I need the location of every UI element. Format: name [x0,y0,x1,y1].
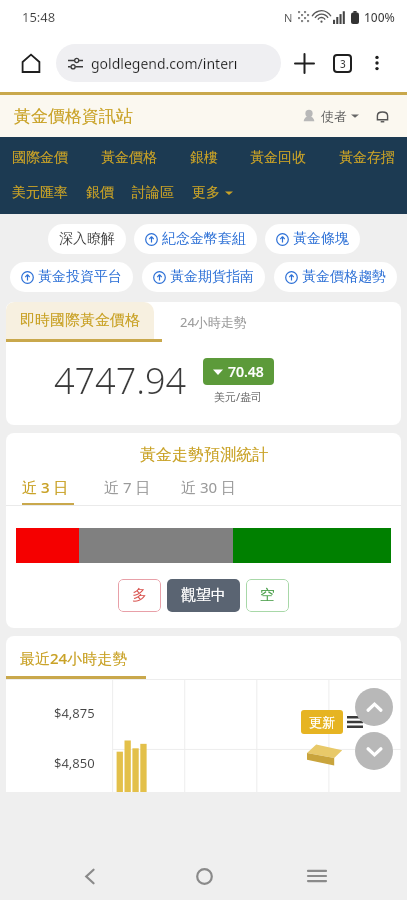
button[interactable]: 紀念金幣套組 [134,224,257,254]
staticText: 觀望中 [181,586,226,605]
button[interactable]: 最近24小時走勢 [6,636,128,676]
staticText: N [284,10,293,25]
button[interactable]: 深入瞭解 [48,224,126,254]
button[interactable]: 銀樓 [190,145,218,171]
button[interactable]: Recent apps [293,852,341,900]
staticText: 100% [364,9,395,25]
button[interactable]: 黃金價格趨勢 [274,262,397,292]
staticText: 黃金價格趨勢 [302,268,386,286]
staticText: goldlegend.com/interı [91,54,238,73]
button[interactable]: 使者 [302,108,359,124]
button[interactable]: Tabs [325,46,359,80]
button[interactable]: goldlegend.com/interı [56,44,281,82]
staticText: 紀念金幣套組 [162,230,246,248]
button[interactable]: 近 30 日 [151,477,236,497]
button[interactable]: 黃金回收 [250,145,306,171]
button[interactable]: 黃金價格 [101,145,157,171]
button[interactable]: 觀望中 [167,579,240,612]
staticText: 更新 [309,714,335,730]
staticText: 3 [340,57,346,71]
button[interactable]: More options [361,47,393,79]
staticText: 多 [132,586,147,605]
button[interactable]: 黃金條塊 [265,224,360,254]
staticText: 15:48 [22,8,56,26]
staticText: 4747.94 [54,356,187,405]
button[interactable]: 黃金價格資訊站 [14,106,133,127]
button[interactable]: 銀價 [86,180,114,206]
button[interactable]: 多 [118,579,161,612]
staticText: 深入瞭解 [59,230,115,248]
button[interactable]: 美元匯率 [12,180,68,206]
button[interactable]: 黃金投資平台 [10,262,133,292]
staticText: 美元/盎司 [214,389,263,404]
button[interactable]: 黃金存摺 [339,145,395,171]
button[interactable]: Notifications [371,105,393,127]
staticText: 使者 [321,108,347,124]
button[interactable]: Scroll down [355,732,393,770]
button[interactable]: Home [14,46,48,80]
staticText: 空 [260,586,275,605]
staticText: $4,850 [54,754,95,772]
button[interactable]: 討論區 [132,180,174,206]
button[interactable]: Back [66,852,114,900]
button[interactable]: 黃金期貨指南 [142,262,265,292]
staticText: $4,875 [54,704,95,722]
button[interactable]: 即時國際黃金價格 [6,302,154,339]
staticText: 黃金條塊 [293,230,349,248]
button[interactable]: 近 3 日 [22,477,69,503]
staticText: 黃金期貨指南 [170,268,254,286]
button[interactable]: 更新 [301,710,343,734]
button[interactable]: Scroll up [355,688,393,726]
staticText: 黃金走勢預測統計 [140,445,268,465]
button[interactable]: 空 [246,579,289,612]
button[interactable]: 近 7 日 [74,477,151,497]
button[interactable]: 國際金價 [12,145,68,171]
button[interactable]: Home [180,852,228,900]
staticText: 更多 [192,184,220,202]
staticText: 70.48 [228,362,264,381]
staticText: 黃金投資平台 [38,268,122,286]
button[interactable]: New tab [287,46,321,80]
staticText: 即時國際黃金價格 [20,311,140,330]
button[interactable]: 更多 [192,180,233,206]
button[interactable]: 24小時走勢 [162,313,247,331]
